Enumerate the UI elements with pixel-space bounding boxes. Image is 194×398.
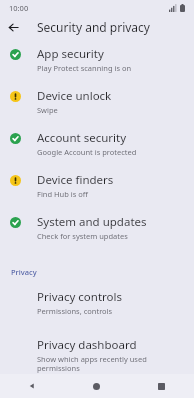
staticText: Check for system updates bbox=[37, 231, 128, 241]
button[interactable]: System and updates bbox=[0, 199, 194, 241]
staticText: Swipe bbox=[37, 105, 58, 115]
button[interactable]: Back bbox=[0, 16, 26, 38]
staticText: System and updates bbox=[37, 214, 147, 230]
staticText: Privacy controls bbox=[37, 289, 123, 305]
staticText: Privacy bbox=[11, 267, 37, 277]
button[interactable]: Recent apps bbox=[129, 374, 194, 398]
button[interactable]: Privacy controls bbox=[0, 277, 194, 316]
button[interactable]: Device finders bbox=[0, 157, 194, 199]
staticText: Google Account is protected bbox=[37, 147, 137, 157]
staticText: Device finders bbox=[37, 172, 114, 188]
button[interactable]: Device unlock bbox=[0, 73, 194, 115]
button[interactable]: Account security bbox=[0, 115, 194, 157]
staticText: Find Hub is off bbox=[37, 189, 88, 199]
staticText: 10:00 bbox=[9, 3, 29, 13]
button[interactable]: Back bbox=[0, 374, 64, 398]
button[interactable]: App security bbox=[0, 38, 194, 73]
staticText: Show which apps recently used permission… bbox=[37, 354, 184, 373]
button[interactable]: Privacy dashboard bbox=[0, 316, 194, 373]
button[interactable]: Home bbox=[64, 374, 129, 398]
staticText: App security bbox=[37, 46, 104, 62]
staticText: Play Protect scanning is on bbox=[37, 63, 132, 73]
staticText: Privacy dashboard bbox=[37, 337, 137, 353]
staticText: Permissions, controls bbox=[37, 306, 113, 316]
staticText: Account security bbox=[37, 130, 127, 146]
staticText: Security and privacy bbox=[37, 19, 150, 35]
staticText: Device unlock bbox=[37, 88, 112, 104]
